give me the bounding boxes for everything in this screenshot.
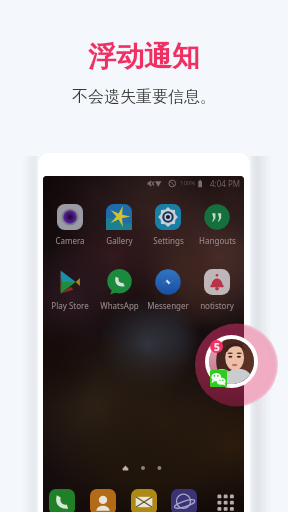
button[interactable]: Floating notification bubble [205, 335, 258, 388]
staticText: WhatsApp [100, 300, 139, 311]
staticText: 浮动通知 [88, 39, 200, 74]
staticText: 4:04 PM [210, 178, 241, 189]
button[interactable]: Browser [171, 489, 197, 512]
button[interactable]: Messages [131, 489, 157, 512]
staticText: 100% [180, 179, 196, 187]
button[interactable]: Contacts [90, 489, 116, 512]
button[interactable]: WhatsApp [97, 269, 141, 311]
button[interactable]: Phone [49, 489, 75, 512]
staticText: Camera [55, 235, 85, 246]
button[interactable]: Apps [212, 489, 238, 512]
staticText: Gallery [106, 235, 133, 246]
staticText: 5 [214, 340, 220, 353]
staticText: Hangouts [199, 235, 236, 246]
button[interactable]: Play Store [48, 269, 92, 311]
staticText: 不会遗失重要信息。 [72, 87, 216, 107]
staticText: Messenger [147, 300, 189, 311]
button[interactable]: Hangouts [195, 204, 239, 246]
button[interactable]: Messenger [146, 269, 190, 311]
button[interactable]: Camera [48, 204, 92, 246]
button[interactable]: Settings [146, 204, 190, 246]
button[interactable]: notistory [195, 269, 239, 311]
staticText: Play Store [51, 300, 89, 311]
button[interactable]: WeChat [210, 370, 227, 387]
staticText: Settings [153, 235, 184, 246]
button[interactable]: Gallery [97, 204, 141, 246]
staticText: notistory [200, 300, 234, 311]
